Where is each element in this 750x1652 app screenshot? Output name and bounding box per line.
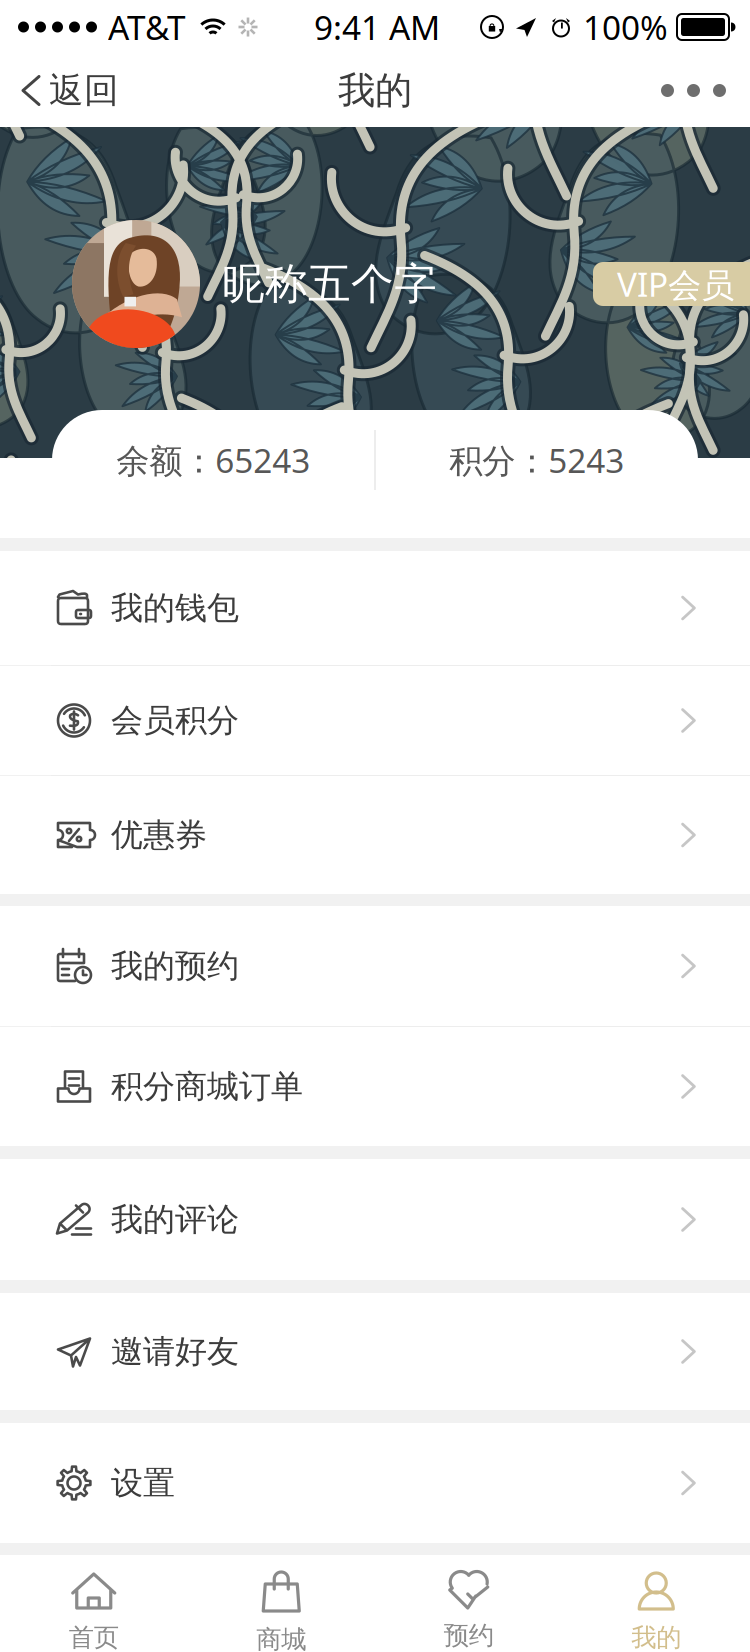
staticText: 我的评论 (111, 1200, 239, 1239)
staticText: 会员积分 (111, 701, 239, 740)
staticText: 我的 (631, 1622, 681, 1652)
staticText: 我的预约 (111, 946, 239, 986)
staticText: 邀请好友 (111, 1332, 239, 1371)
button[interactable]: 更多 (641, 64, 750, 117)
staticText: 积分：5243 (449, 438, 624, 482)
staticText: 商城 (256, 1624, 306, 1652)
button[interactable]: 商城 (187, 1555, 375, 1652)
staticText: VIP会员 (617, 262, 734, 306)
staticText: 首页 (69, 1622, 119, 1652)
staticText: 9:41 AM (314, 5, 440, 49)
staticText: 余额：65243 (116, 438, 310, 482)
staticText: 预约 (444, 1620, 494, 1651)
button[interactable]: 我的钱包 (0, 551, 750, 666)
staticText: 返回 (49, 69, 119, 112)
button[interactable]: 会员积分 (0, 666, 750, 776)
button[interactable]: 邀请好友 (0, 1293, 750, 1410)
button[interactable]: 积分商城订单 (0, 1027, 750, 1146)
button[interactable]: 我的预约 (0, 906, 750, 1027)
button[interactable]: 优惠券 (0, 776, 750, 894)
button[interactable]: 设置 (0, 1423, 750, 1543)
staticText: 100% (583, 5, 668, 49)
staticText: 我的 (338, 68, 412, 113)
button[interactable]: 我的评论 (0, 1159, 750, 1280)
staticText: 积分商城订单 (111, 1067, 303, 1106)
button[interactable]: 预约 (375, 1555, 562, 1652)
button[interactable]: 我的 (562, 1555, 750, 1652)
staticText: 优惠券 (111, 815, 207, 855)
staticText: 我的钱包 (111, 588, 239, 628)
button[interactable]: 首页 (0, 1555, 187, 1652)
staticText: 设置 (111, 1463, 175, 1503)
button[interactable]: 返回 (0, 56, 135, 125)
staticText: AT&T (108, 5, 186, 49)
staticText: 昵称五个字 (222, 258, 437, 310)
